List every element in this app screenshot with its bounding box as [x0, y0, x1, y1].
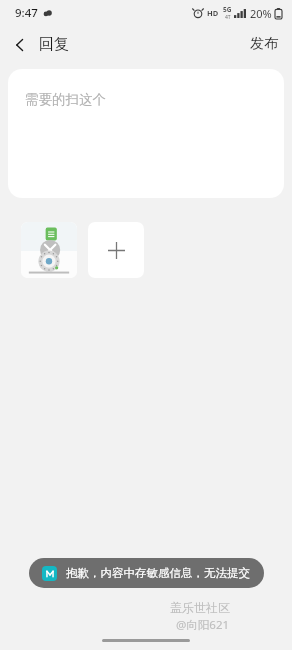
staticText: 盖乐世社区 [170, 600, 230, 615]
staticText: 9:47 [15, 5, 38, 21]
staticText: 需要的扫这个 [25, 91, 106, 108]
staticText: @向阳621 [176, 617, 230, 633]
button[interactable]: 发布 [236, 29, 292, 59]
staticText: 4T [225, 14, 231, 21]
staticText: 5G [223, 5, 232, 14]
button[interactable]: Attached screenshot [21, 222, 77, 278]
button[interactable]: 抱歉，内容中存敏感信息，无法提交 [29, 558, 264, 588]
button[interactable]: Back [0, 31, 77, 58]
staticText: HD [207, 8, 219, 18]
staticText: 发布 [250, 35, 278, 53]
button[interactable]: 需要的扫这个 [8, 69, 284, 198]
other: Back [12, 37, 28, 53]
staticText: 20% [250, 6, 272, 21]
staticText: 回复 [39, 35, 69, 54]
staticText: 抱歉，内容中存敏感信息，无法提交 [66, 566, 250, 580]
button[interactable]: Add image [88, 222, 144, 278]
